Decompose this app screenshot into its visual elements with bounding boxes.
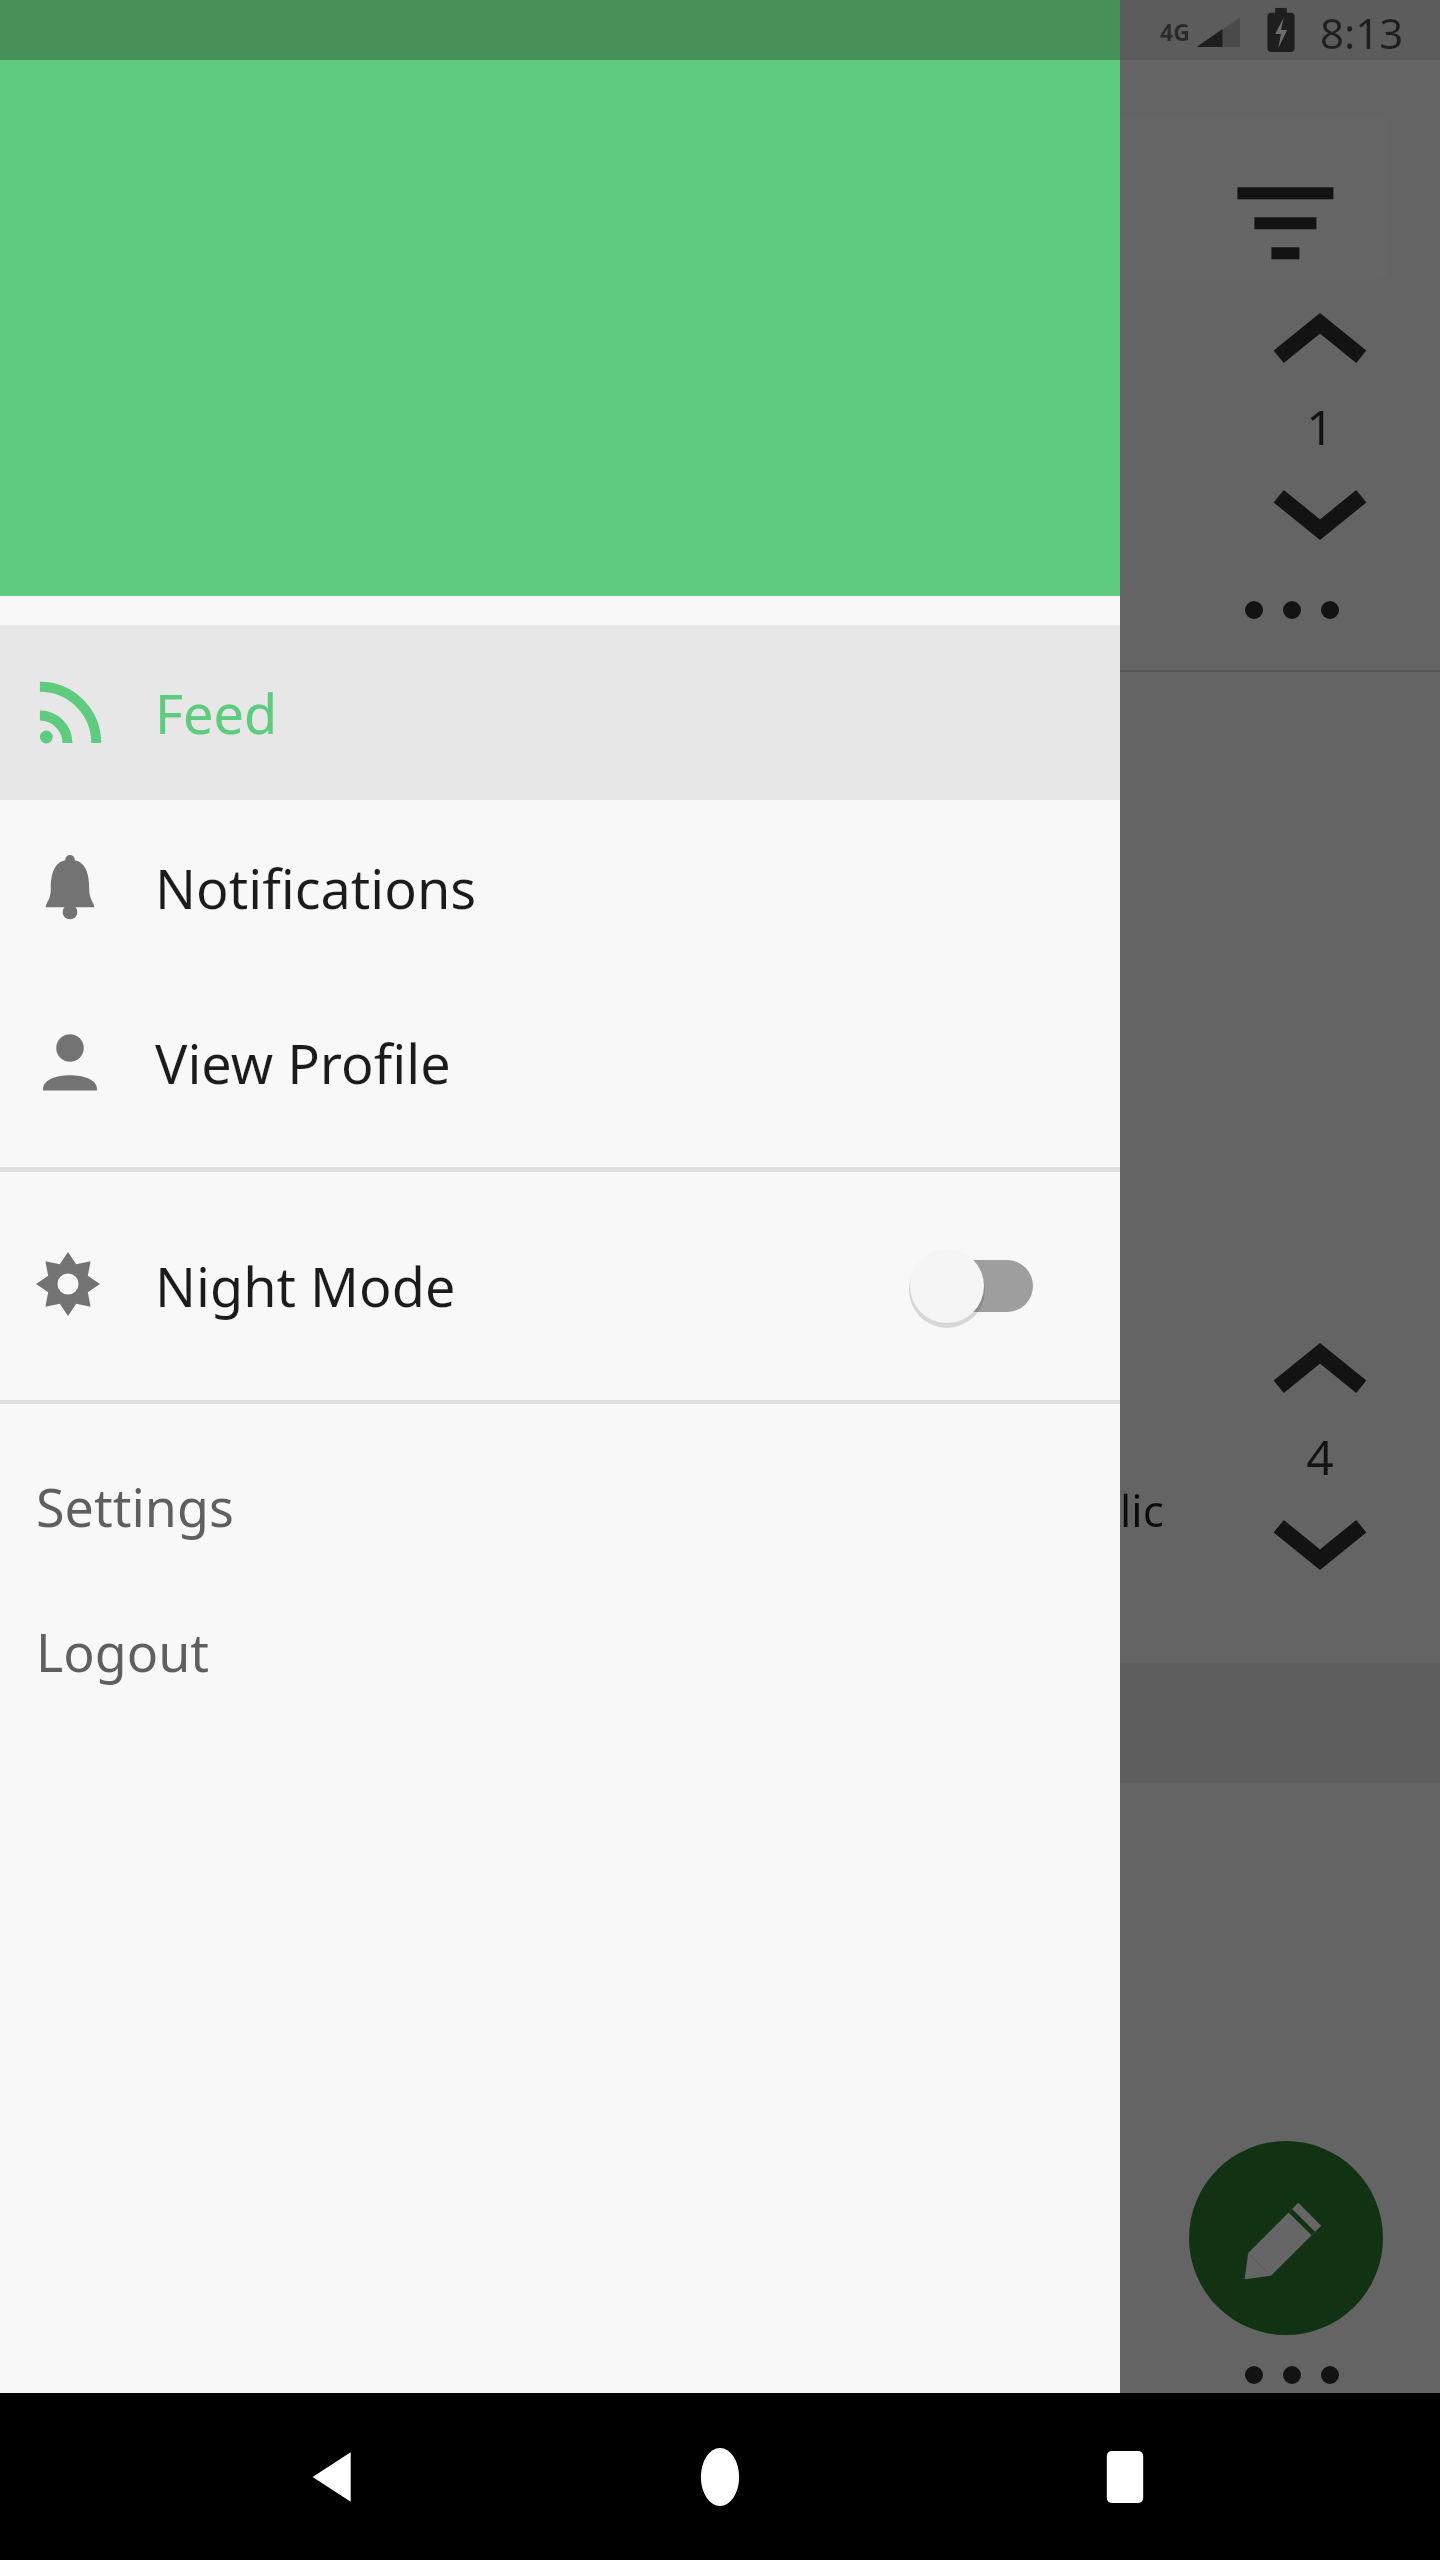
staticText: 4G bbox=[1160, 16, 1190, 47]
button[interactable]: Night Mode bbox=[0, 1172, 1120, 1400]
button[interactable]: Home bbox=[645, 2393, 795, 2560]
staticText: Logout bbox=[36, 1616, 210, 1687]
staticText: Notifications bbox=[155, 851, 477, 925]
staticText: Night Mode bbox=[155, 1249, 456, 1323]
button[interactable]: Back bbox=[255, 2393, 415, 2560]
button[interactable]: Recent apps bbox=[1050, 2393, 1200, 2560]
button[interactable]: Filter bbox=[1103, 115, 1388, 280]
button[interactable]: Compose bbox=[1189, 2141, 1383, 2335]
button[interactable]: Notifications bbox=[0, 800, 1120, 975]
button[interactable]: Feed bbox=[0, 625, 1120, 800]
button[interactable]: Night Mode toggle bbox=[895, 1236, 1065, 1336]
staticText: 8:13 bbox=[1320, 4, 1404, 58]
staticText: 1 bbox=[1306, 394, 1334, 459]
staticText: View Profile bbox=[155, 1026, 451, 1100]
staticText: 4 bbox=[1306, 1424, 1334, 1489]
button[interactable]: View Profile bbox=[0, 975, 1120, 1150]
button[interactable]: Logout bbox=[0, 1599, 1120, 1704]
staticText: Settings bbox=[36, 1471, 234, 1542]
staticText: lic bbox=[1120, 1480, 1164, 1540]
button[interactable]: Settings bbox=[0, 1454, 1120, 1559]
staticText: Feed bbox=[155, 676, 278, 750]
